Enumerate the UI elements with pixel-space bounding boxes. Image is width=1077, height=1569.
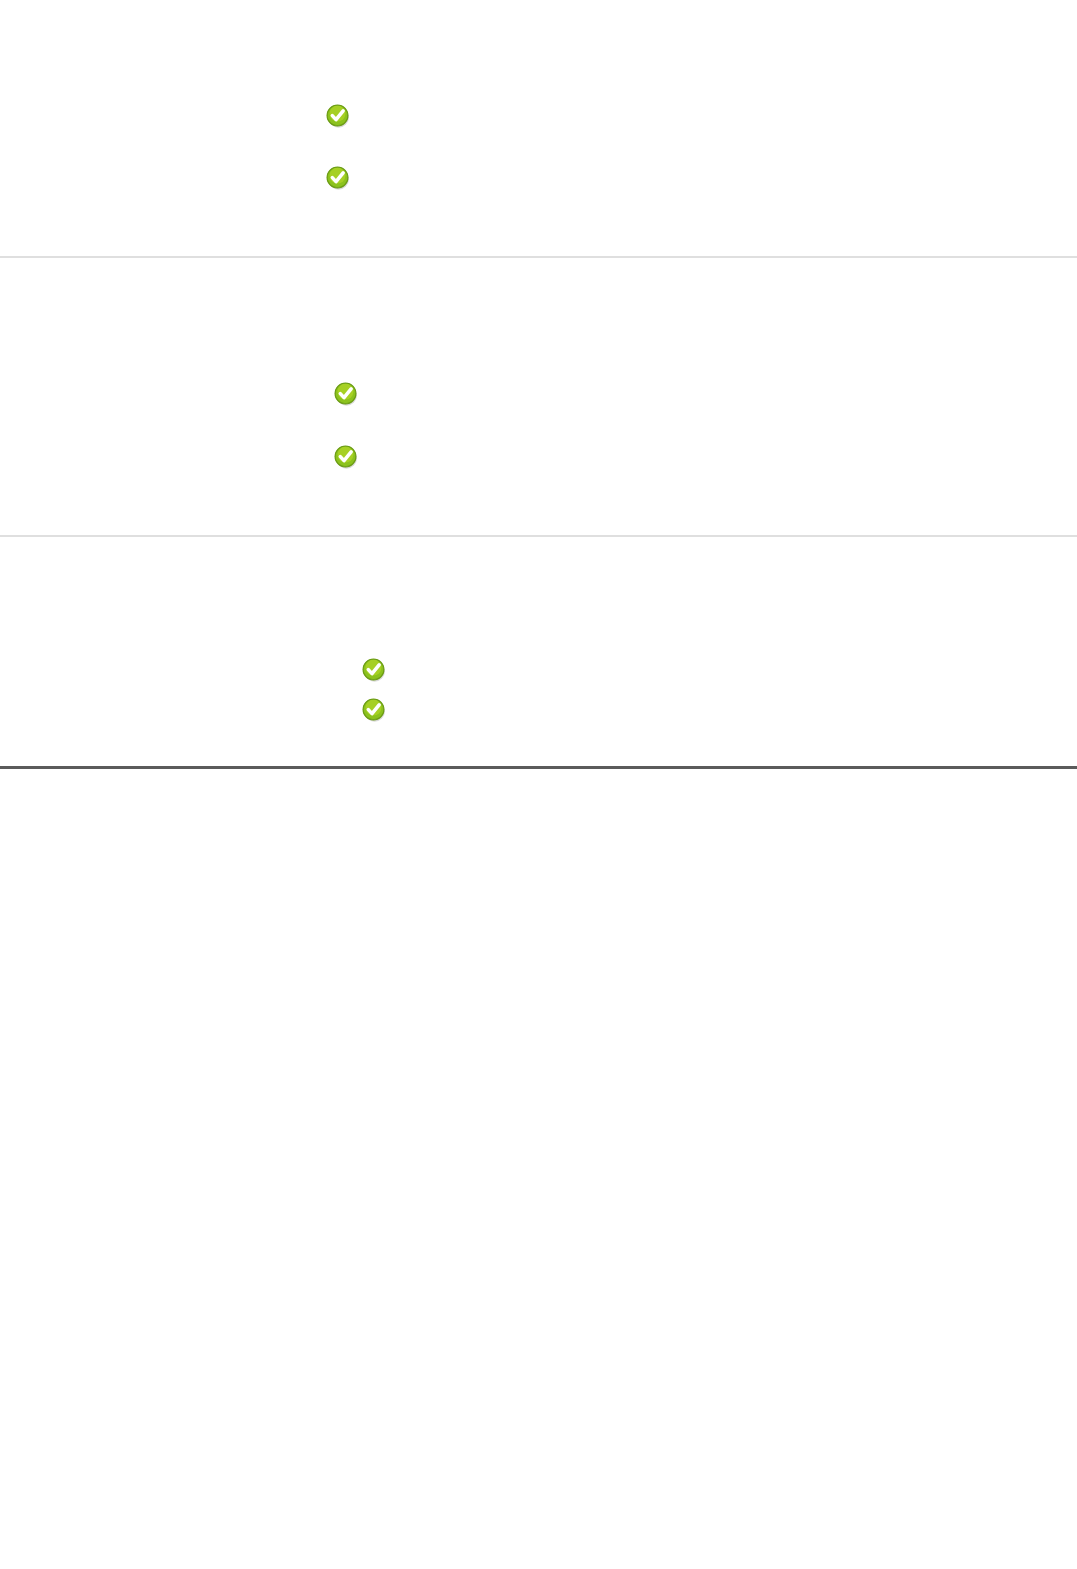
button[interactable]: Validated (334, 445, 357, 468)
button[interactable]: Validated (334, 382, 357, 405)
button[interactable]: Validated (362, 698, 385, 721)
button[interactable]: Validated (326, 166, 349, 189)
button[interactable]: Validated (326, 104, 349, 127)
button[interactable]: Validated (362, 658, 385, 681)
